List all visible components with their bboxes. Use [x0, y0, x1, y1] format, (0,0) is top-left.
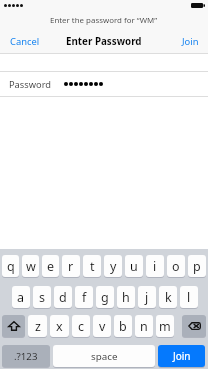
staticText: k — [165, 289, 172, 306]
staticText: o — [172, 258, 180, 275]
button[interactable]: Join — [174, 31, 208, 52]
staticText: m — [159, 318, 171, 335]
staticText: c — [78, 318, 85, 335]
staticText: Join — [182, 35, 199, 48]
button[interactable]: u — [125, 255, 143, 277]
staticText: Cancel — [10, 35, 40, 48]
staticText: space — [91, 350, 118, 363]
staticText: Enter Password — [66, 35, 142, 48]
button[interactable]: Backspace — [182, 315, 206, 337]
button[interactable]: t — [83, 255, 101, 277]
staticText: l — [187, 289, 191, 306]
button[interactable]: f — [75, 286, 93, 308]
staticText: .?123 — [14, 350, 38, 363]
button[interactable]: e — [42, 255, 59, 277]
staticText: r — [68, 258, 74, 275]
button[interactable]: s — [33, 286, 51, 308]
staticText: d — [59, 289, 67, 306]
button[interactable]: b — [114, 315, 132, 337]
button[interactable]: l — [180, 286, 198, 308]
staticText: e — [47, 258, 55, 275]
staticText: j — [145, 289, 149, 306]
button[interactable]: z — [28, 315, 47, 337]
staticText: s — [39, 289, 45, 306]
staticText: z — [35, 318, 41, 335]
staticText: b — [119, 318, 127, 335]
button[interactable]: Join — [158, 345, 205, 367]
button[interactable]: y — [104, 255, 122, 277]
button[interactable]: Password — [0, 72, 208, 96]
button[interactable]: i — [146, 255, 164, 277]
button[interactable]: h — [117, 286, 135, 308]
staticText: t — [90, 258, 95, 275]
staticText: v — [99, 318, 106, 335]
staticText: f — [82, 289, 87, 306]
staticText: Enter the password for “WM” — [50, 15, 158, 26]
button[interactable]: w — [22, 255, 39, 277]
staticText: g — [101, 289, 109, 306]
button[interactable]: .?123 — [2, 345, 50, 367]
staticText: p — [193, 258, 201, 275]
button[interactable]: c — [72, 315, 90, 337]
button[interactable]: a — [12, 286, 30, 308]
button[interactable]: g — [96, 286, 114, 308]
staticText: w — [26, 258, 36, 275]
staticText: h — [122, 289, 130, 306]
staticText: Join — [173, 349, 191, 363]
staticText: a — [17, 289, 25, 306]
button[interactable]: j — [138, 286, 156, 308]
button[interactable]: d — [54, 286, 72, 308]
button[interactable]: q — [2, 255, 19, 277]
button[interactable]: space — [53, 345, 155, 367]
button[interactable]: r — [62, 255, 80, 277]
button[interactable]: o — [167, 255, 185, 277]
button[interactable]: x — [50, 315, 69, 337]
staticText: i — [153, 258, 157, 275]
button[interactable]: p — [188, 255, 206, 277]
button[interactable]: Cancel — [0, 31, 48, 52]
staticText: y — [110, 258, 117, 275]
button[interactable]: k — [159, 286, 177, 308]
button[interactable]: n — [135, 315, 153, 337]
button[interactable]: m — [156, 315, 174, 337]
staticText: x — [56, 318, 63, 335]
staticText: Password — [9, 78, 52, 91]
staticText: q — [7, 258, 15, 275]
button[interactable]: Shift — [2, 315, 25, 337]
button[interactable]: v — [93, 315, 111, 337]
staticText: u — [130, 258, 138, 275]
staticText: n — [140, 318, 148, 335]
